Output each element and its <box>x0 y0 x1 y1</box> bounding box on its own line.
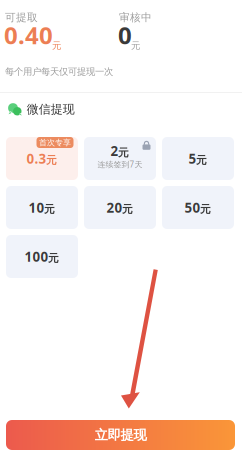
staticText: 元 <box>200 203 211 216</box>
button[interactable]: 10 <box>6 186 78 229</box>
staticText: 2 <box>110 142 118 160</box>
button[interactable]: 立即提现 <box>6 420 235 450</box>
staticText: 每个用户每天仅可提现一次 <box>5 66 113 77</box>
button[interactable]: 100 <box>6 235 78 278</box>
staticText: 元 <box>44 203 55 216</box>
staticText: 微信提现 <box>27 102 75 117</box>
staticText: 元 <box>122 203 133 216</box>
staticText: 元 <box>48 252 59 265</box>
staticText: 5 <box>188 150 196 167</box>
staticText: 首次专享 <box>39 138 71 147</box>
button[interactable]: 5 <box>162 137 234 180</box>
staticText: 100 <box>24 248 48 265</box>
button[interactable]: 2 <box>84 137 156 180</box>
button[interactable]: 50 <box>162 186 234 229</box>
button[interactable]: 0.3 <box>6 137 78 180</box>
staticText: 审核中 <box>119 11 152 24</box>
staticText: 元 <box>118 146 129 159</box>
staticText: 10 <box>28 199 44 216</box>
staticText: 元 <box>52 40 61 51</box>
staticText: 0 <box>118 19 132 51</box>
staticText: 连续签到7天 <box>97 159 142 170</box>
button[interactable]: 20 <box>84 186 156 229</box>
staticText: 20 <box>106 199 122 216</box>
staticText: 元 <box>131 40 140 51</box>
staticText: 元 <box>196 154 207 167</box>
staticText: 元 <box>46 154 57 167</box>
staticText: 立即提现 <box>94 427 146 443</box>
staticText: 50 <box>184 199 200 216</box>
staticText: 可提取 <box>5 11 38 24</box>
staticText: 0.40 <box>4 19 53 51</box>
staticText: 0.3 <box>26 150 46 167</box>
